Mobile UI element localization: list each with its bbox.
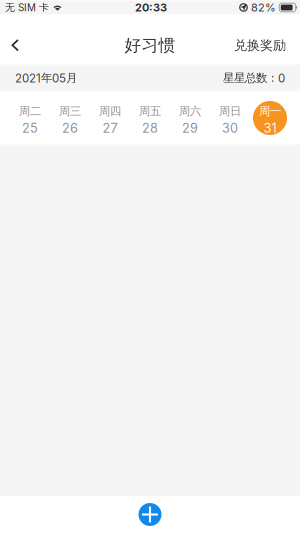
staticText: 82% [251,1,276,14]
button[interactable]: 周五 [130,91,170,144]
staticText: 好习惯 [124,35,175,56]
button[interactable]: 周四 [90,91,130,144]
button[interactable]: 周三 [50,91,90,144]
button[interactable]: 周一 [250,91,290,144]
staticText: 周日 [219,104,241,118]
button[interactable]: 返回 [0,27,31,63]
staticText: 周三 [59,104,81,118]
staticText: 星星总数：0 [223,71,285,85]
staticText: 周一 [259,104,281,118]
staticText: 27 [102,120,117,136]
button[interactable]: 周二 [10,91,50,144]
staticText: 周四 [99,104,121,118]
staticText: 周六 [179,104,201,118]
staticText: 2021年05月 [15,71,77,85]
staticText: 周五 [139,104,161,118]
staticText: 无 SIM 卡 [5,1,49,14]
staticText: 25 [22,120,38,136]
staticText: 31 [263,120,276,136]
staticText: 30 [222,120,238,136]
button[interactable]: 周日 [210,91,250,144]
staticText: 29 [182,120,198,136]
button[interactable]: 添加习惯 [0,496,300,532]
staticText: 26 [62,120,78,136]
button[interactable]: 兑换奖励 [234,27,300,63]
staticText: 28 [142,120,158,136]
button[interactable]: 周六 [170,91,210,144]
staticText: 兑换奖励 [234,37,286,54]
staticText: 周二 [19,104,41,118]
staticText: 20:33 [135,1,167,14]
